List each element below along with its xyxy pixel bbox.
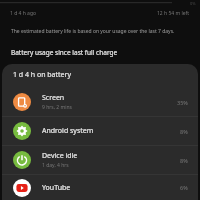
staticText: 8%	[180, 157, 188, 164]
staticText: 9 hrs, 2 mins	[42, 104, 72, 111]
other: YouTube	[13, 179, 31, 197]
staticText: 1 d 4 h ago	[10, 10, 36, 17]
other: Android system	[13, 122, 31, 140]
staticText: The estimated battery life is based on y…	[11, 28, 175, 35]
staticText: 0%	[190, 1, 196, 6]
button[interactable]: YouTube	[2, 175, 198, 200]
staticText: Device idle	[42, 151, 78, 161]
staticText: YouTube	[42, 183, 71, 193]
staticText: 8%	[180, 128, 188, 135]
button[interactable]: Device idle	[2, 146, 198, 174]
staticText: Android system	[42, 126, 94, 136]
staticText: Screen	[42, 93, 65, 103]
staticText: 1 d 4 h on battery	[13, 70, 71, 80]
staticText: 1 day, 4 hrs	[42, 162, 69, 169]
staticText: 12 h 54 m left	[157, 10, 190, 17]
other: Device idle	[13, 151, 31, 169]
button[interactable]: Screen usage	[2, 88, 198, 116]
staticText: 35%	[177, 99, 188, 106]
staticText: Battery usage since last full charge	[11, 48, 118, 57]
button[interactable]: Android system	[2, 117, 198, 145]
staticText: 6%	[180, 184, 188, 191]
other: Screen usage	[13, 93, 31, 111]
